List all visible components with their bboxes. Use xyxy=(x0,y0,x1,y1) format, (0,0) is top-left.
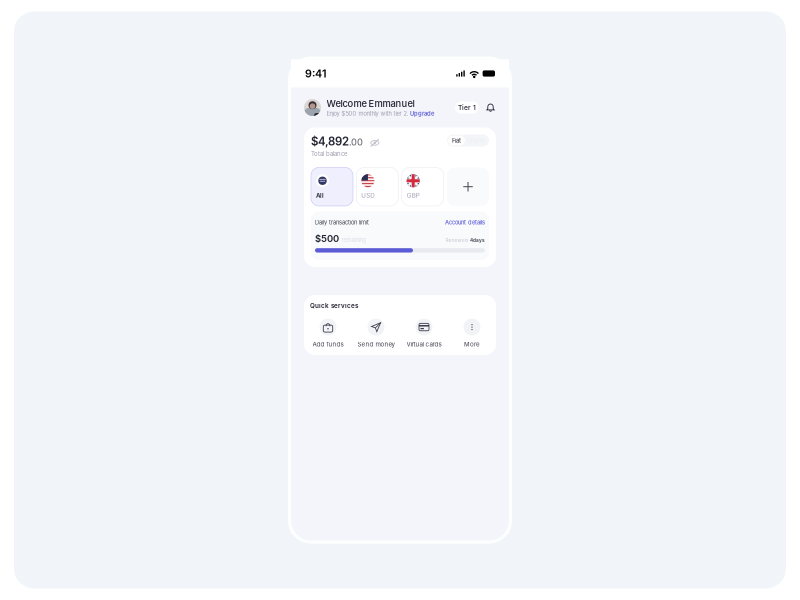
staticText: Fiat xyxy=(452,137,461,144)
staticText: Add funds xyxy=(312,341,343,348)
staticText: 9:41 xyxy=(305,67,327,80)
button[interactable]: Add funds xyxy=(304,319,352,348)
button[interactable]: Tier 1 xyxy=(455,101,479,113)
button[interactable]: Virtual cards xyxy=(400,319,448,348)
button[interactable]: Notifications xyxy=(484,101,497,114)
staticText: Total balance xyxy=(311,150,347,157)
button[interactable]: Add currency xyxy=(447,167,489,206)
staticText: Welcome Emmanuel xyxy=(326,98,414,109)
staticText: Virtual cards xyxy=(406,341,441,348)
staticText: Enjoy $500 monthly with tier 2. xyxy=(326,110,408,117)
staticText: 4days xyxy=(470,237,485,243)
button[interactable]: Account details xyxy=(445,219,485,226)
staticText: Send money xyxy=(357,341,394,348)
button[interactable]: More xyxy=(448,319,496,348)
button[interactable]: GBP xyxy=(402,167,444,206)
staticText: remaining xyxy=(341,236,366,243)
staticText: All xyxy=(316,192,324,199)
staticText: $500 xyxy=(315,233,339,244)
button[interactable]: Send money xyxy=(352,319,400,348)
staticText: USD xyxy=(361,192,374,199)
staticText: Quick services xyxy=(310,302,358,310)
staticText: Renews in xyxy=(446,237,469,243)
staticText: Daily transaction limit xyxy=(315,219,369,226)
staticText: .00 xyxy=(349,136,363,148)
staticText: GBP xyxy=(407,192,420,199)
staticText: $4,892 xyxy=(311,134,349,148)
button[interactable]: Fiat xyxy=(448,136,465,145)
staticText: Tier 1 xyxy=(458,103,476,112)
staticText: More xyxy=(464,341,480,348)
staticText: Upgrade xyxy=(410,110,434,117)
staticText: Account details xyxy=(445,219,485,226)
button[interactable]: All xyxy=(311,167,353,206)
button[interactable]: USD xyxy=(356,167,398,206)
